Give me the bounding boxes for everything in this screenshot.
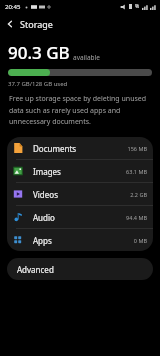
staticText: Videos	[33, 189, 130, 200]
staticText: Free up storage space by deleting unused…	[9, 94, 151, 126]
staticText: Images	[33, 166, 126, 177]
button[interactable]: Documents	[7, 137, 153, 159]
staticText: %	[135, 3, 140, 10]
staticText: Documents	[33, 143, 127, 154]
staticText: 37.7 GB/128 GB used	[8, 80, 68, 88]
staticText: 20:45	[5, 3, 21, 11]
button[interactable]: Images	[7, 160, 153, 182]
staticText: Advanced	[17, 264, 54, 275]
staticText: Audio	[33, 212, 126, 223]
staticText: 94.4 MB	[126, 214, 147, 221]
staticText: 156 MB	[127, 145, 147, 152]
staticText: 2.2 GB	[130, 191, 147, 198]
staticText: 90.3 GB	[8, 41, 70, 64]
button[interactable]: Advanced	[7, 258, 153, 280]
staticText: Storage	[20, 18, 53, 30]
button[interactable]: Back	[0, 14, 20, 34]
button[interactable]: Videos	[7, 183, 153, 205]
staticText: 0 MB	[133, 237, 147, 244]
staticText: Apps	[33, 235, 133, 246]
staticText: available	[73, 53, 100, 62]
button[interactable]: Audio	[7, 206, 153, 228]
button[interactable]: Apps	[7, 229, 153, 251]
staticText: 63.1 MB	[126, 168, 147, 175]
